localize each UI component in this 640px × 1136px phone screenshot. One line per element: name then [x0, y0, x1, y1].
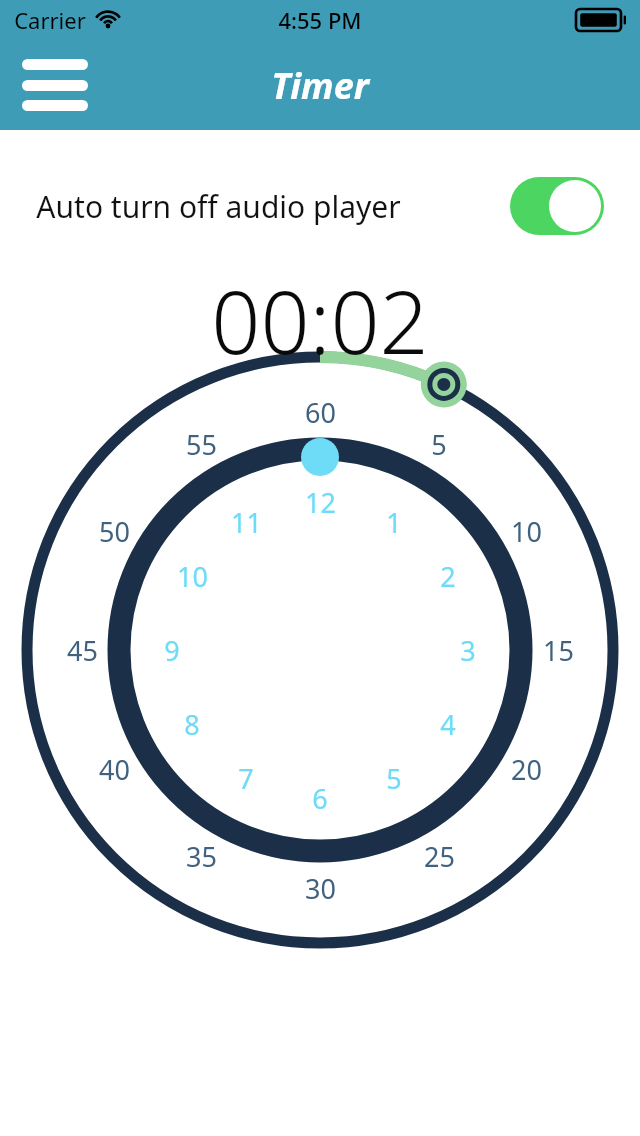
staticText: 10: [177, 558, 208, 595]
button[interactable]: Menu: [22, 59, 90, 111]
staticText: 4:55 PM: [278, 5, 362, 35]
button[interactable]: Auto turn off audio player toggle: [510, 177, 604, 235]
staticText: 40: [99, 751, 130, 788]
staticText: 20: [511, 751, 542, 788]
staticText: 8: [184, 706, 200, 743]
staticText: 6: [312, 780, 328, 817]
staticText: 4: [440, 706, 456, 743]
staticText: 2: [440, 558, 456, 595]
staticText: 1: [386, 504, 402, 541]
staticText: 7: [238, 760, 254, 797]
staticText: 3: [460, 632, 476, 669]
staticText: 5: [386, 760, 402, 797]
staticText: 5: [431, 426, 447, 463]
staticText: 25: [424, 838, 455, 875]
staticText: Timer: [271, 61, 369, 110]
staticText: 50: [99, 513, 130, 550]
staticText: 9: [164, 632, 180, 669]
staticText: Carrier: [14, 5, 86, 35]
staticText: 10: [511, 513, 542, 550]
staticText: 35: [186, 838, 217, 875]
staticText: 60: [305, 394, 336, 431]
staticText: Auto turn off audio player: [36, 186, 401, 227]
staticText: 30: [305, 870, 336, 907]
staticText: 55: [186, 426, 217, 463]
staticText: 00:02: [211, 262, 429, 366]
staticText: 15: [543, 632, 574, 669]
staticText: 45: [67, 632, 98, 669]
staticText: 12: [305, 484, 336, 521]
staticText: 11: [231, 504, 262, 541]
